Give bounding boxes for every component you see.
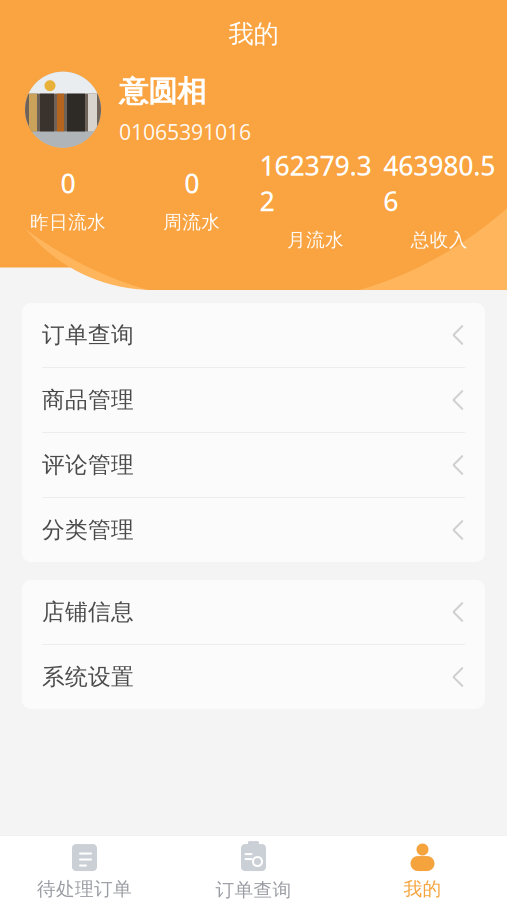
staticText: 162379.32 bbox=[259, 148, 371, 218]
button[interactable]: 评论管理 bbox=[22, 433, 485, 497]
staticText: 订单查询 bbox=[215, 878, 291, 900]
staticText: 分类管理 bbox=[42, 516, 134, 544]
button[interactable]: 分类管理 bbox=[22, 498, 485, 562]
button[interactable]: 我的 bbox=[338, 835, 507, 900]
button[interactable]: 待处理订单 bbox=[0, 835, 169, 900]
staticText: 系统设置 bbox=[42, 663, 134, 691]
staticText: 昨日流水 bbox=[30, 211, 106, 234]
staticText: 评论管理 bbox=[42, 451, 134, 479]
staticText: 待处理订单 bbox=[37, 877, 132, 900]
staticText: 总收入 bbox=[411, 228, 468, 251]
staticText: 01065391016 bbox=[119, 117, 251, 146]
button[interactable]: 订单查询 bbox=[169, 834, 338, 900]
button[interactable]: 系统设置 bbox=[22, 645, 485, 709]
staticText: 月流水 bbox=[287, 228, 344, 251]
staticText: 周流水 bbox=[163, 211, 220, 234]
button[interactable]: 商品管理 bbox=[22, 368, 485, 432]
staticText: 店铺信息 bbox=[42, 598, 134, 626]
staticText: 意圆相 bbox=[119, 73, 206, 109]
staticText: 0 bbox=[184, 165, 199, 201]
button[interactable]: 订单查询 bbox=[22, 303, 485, 367]
staticText: 463980.56 bbox=[383, 148, 495, 218]
staticText: 商品管理 bbox=[42, 386, 134, 414]
staticText: 订单查询 bbox=[42, 321, 134, 349]
button[interactable]: 店铺信息 bbox=[22, 580, 485, 644]
staticText: 我的 bbox=[403, 877, 441, 900]
staticText: 0 bbox=[60, 165, 75, 201]
staticText: 我的 bbox=[228, 19, 278, 50]
